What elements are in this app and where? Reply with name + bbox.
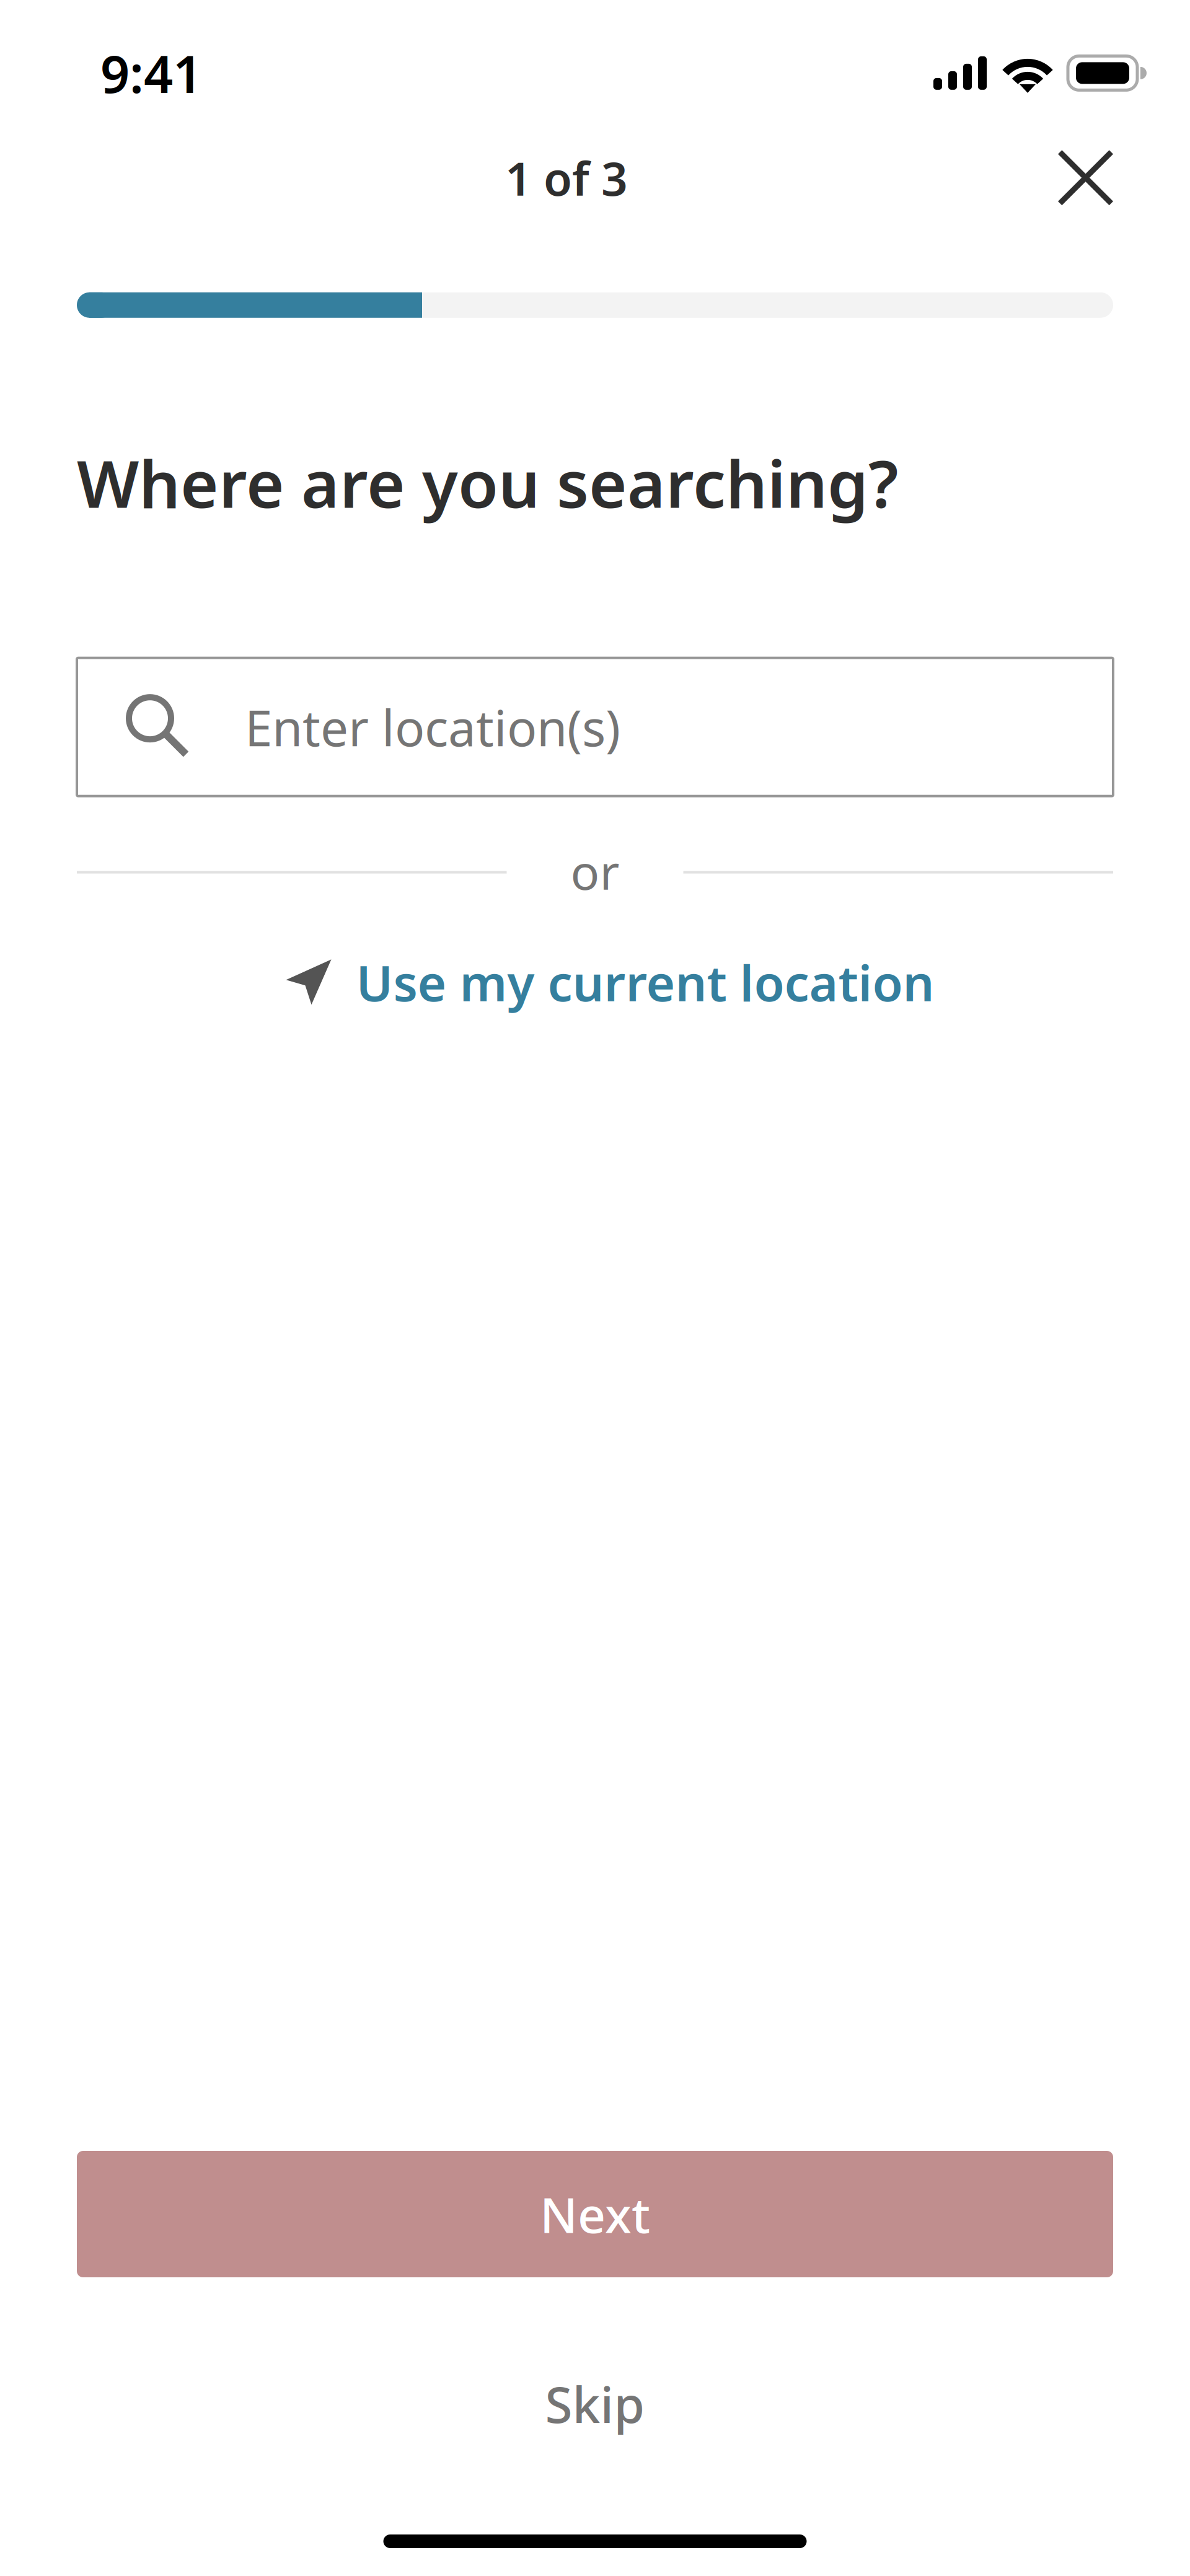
staticText: 9:41 [100, 39, 202, 107]
staticText: Skip [545, 2371, 645, 2437]
staticText: 1 of 3 [505, 147, 628, 208]
staticText: Where are you searching? [77, 439, 899, 526]
staticText: Use my current location [356, 949, 934, 1015]
button[interactable]: Enter location(s) [77, 658, 1113, 796]
button[interactable]: Next [77, 2151, 1113, 2277]
button[interactable]: Use my current location [256, 937, 934, 1027]
button[interactable]: Skip [77, 2360, 1113, 2447]
staticText: or [571, 839, 619, 903]
button[interactable]: Close [1021, 134, 1113, 221]
staticText: Enter location(s) [245, 694, 620, 760]
staticText: Next [540, 2182, 650, 2247]
